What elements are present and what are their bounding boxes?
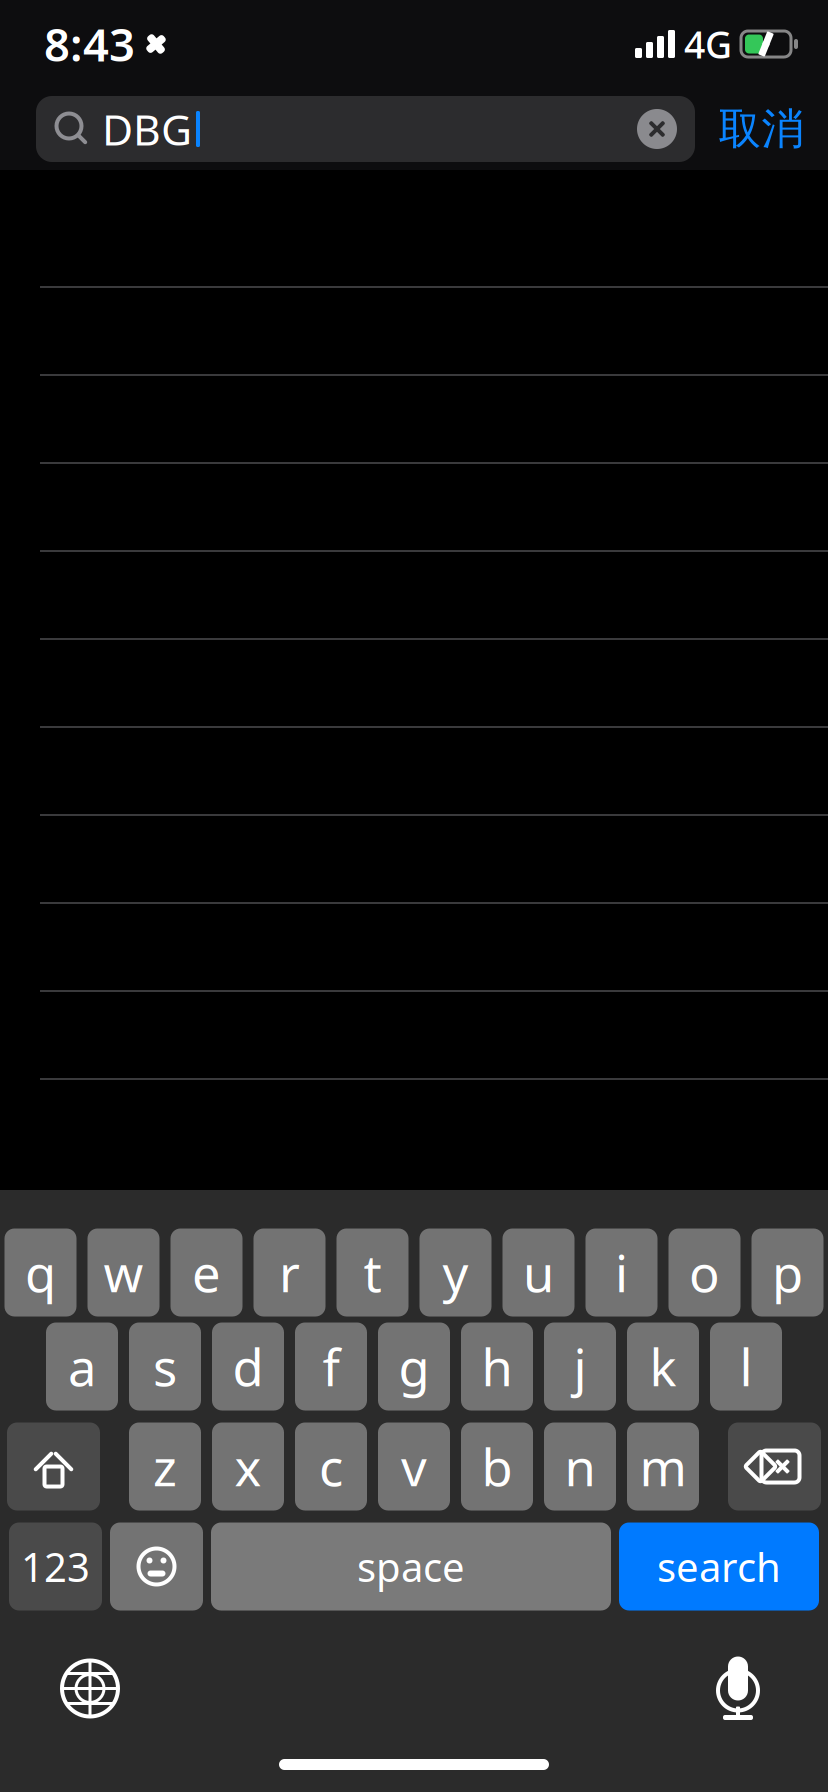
button[interactable]: Dictation: [683, 1643, 793, 1733]
staticText: 4G: [684, 19, 732, 69]
staticText: 8:43: [44, 14, 135, 74]
button[interactable]: h: [461, 1322, 533, 1410]
staticText: y: [442, 1239, 468, 1306]
button[interactable]: q: [4, 1228, 76, 1316]
button[interactable]: c: [295, 1422, 367, 1510]
button[interactable]: m: [627, 1422, 699, 1510]
button[interactable]: s: [129, 1322, 201, 1410]
staticText: c: [319, 1433, 343, 1500]
staticText: search: [657, 1540, 781, 1593]
button[interactable]: a: [46, 1322, 118, 1410]
button[interactable]: space: [211, 1522, 611, 1610]
staticText: x: [234, 1433, 261, 1500]
staticText: s: [153, 1333, 177, 1400]
staticText: l: [739, 1333, 752, 1400]
staticText: h: [481, 1333, 512, 1400]
staticText: p: [772, 1239, 803, 1306]
staticText: 取消: [718, 103, 804, 155]
staticText: j: [573, 1333, 586, 1400]
button[interactable]: w: [87, 1228, 159, 1316]
staticText: a: [68, 1333, 96, 1400]
button[interactable]: l: [710, 1322, 782, 1410]
button[interactable]: j: [544, 1322, 616, 1410]
button[interactable]: k: [627, 1322, 699, 1410]
staticText: f: [322, 1333, 339, 1400]
staticText: v: [401, 1433, 427, 1500]
button[interactable]: x: [212, 1422, 284, 1510]
button[interactable]: p: [751, 1228, 823, 1316]
staticText: m: [639, 1433, 686, 1500]
button[interactable]: f: [295, 1322, 367, 1410]
button[interactable]: t: [336, 1228, 408, 1316]
staticText: t: [363, 1239, 381, 1306]
staticText: 123: [21, 1540, 90, 1593]
button[interactable]: Clear text: [637, 109, 695, 149]
button[interactable]: n: [544, 1422, 616, 1510]
button[interactable]: search: [619, 1522, 819, 1610]
button[interactable]: o: [668, 1228, 740, 1316]
button[interactable]: Delete: [728, 1422, 821, 1510]
staticText: g: [398, 1333, 429, 1400]
button[interactable]: z: [129, 1422, 201, 1510]
staticText: k: [649, 1333, 676, 1400]
button[interactable]: 取消: [695, 96, 828, 162]
staticText: r: [279, 1239, 300, 1306]
button[interactable]: d: [212, 1322, 284, 1410]
staticText: u: [523, 1239, 554, 1306]
button[interactable]: e: [170, 1228, 242, 1316]
button[interactable]: g: [378, 1322, 450, 1410]
button[interactable]: Emoji: [110, 1522, 203, 1610]
staticText: z: [153, 1433, 177, 1500]
staticText: d: [232, 1333, 263, 1400]
button[interactable]: Shift: [7, 1422, 100, 1510]
button[interactable]: v: [378, 1422, 450, 1510]
staticText: e: [192, 1239, 221, 1306]
button[interactable]: i: [585, 1228, 657, 1316]
staticText: n: [564, 1433, 595, 1500]
staticText: q: [25, 1239, 56, 1306]
button[interactable]: u: [502, 1228, 574, 1316]
staticText: i: [615, 1239, 628, 1306]
staticText: b: [481, 1433, 512, 1500]
button[interactable]: r: [253, 1228, 325, 1316]
button[interactable]: Next keyboard: [35, 1643, 145, 1733]
staticText: o: [689, 1239, 720, 1306]
staticText: space: [357, 1540, 465, 1593]
button[interactable]: y: [419, 1228, 491, 1316]
button[interactable]: 123: [9, 1522, 102, 1610]
staticText: DBG: [102, 101, 192, 157]
staticText: w: [103, 1239, 143, 1306]
button[interactable]: b: [461, 1422, 533, 1510]
